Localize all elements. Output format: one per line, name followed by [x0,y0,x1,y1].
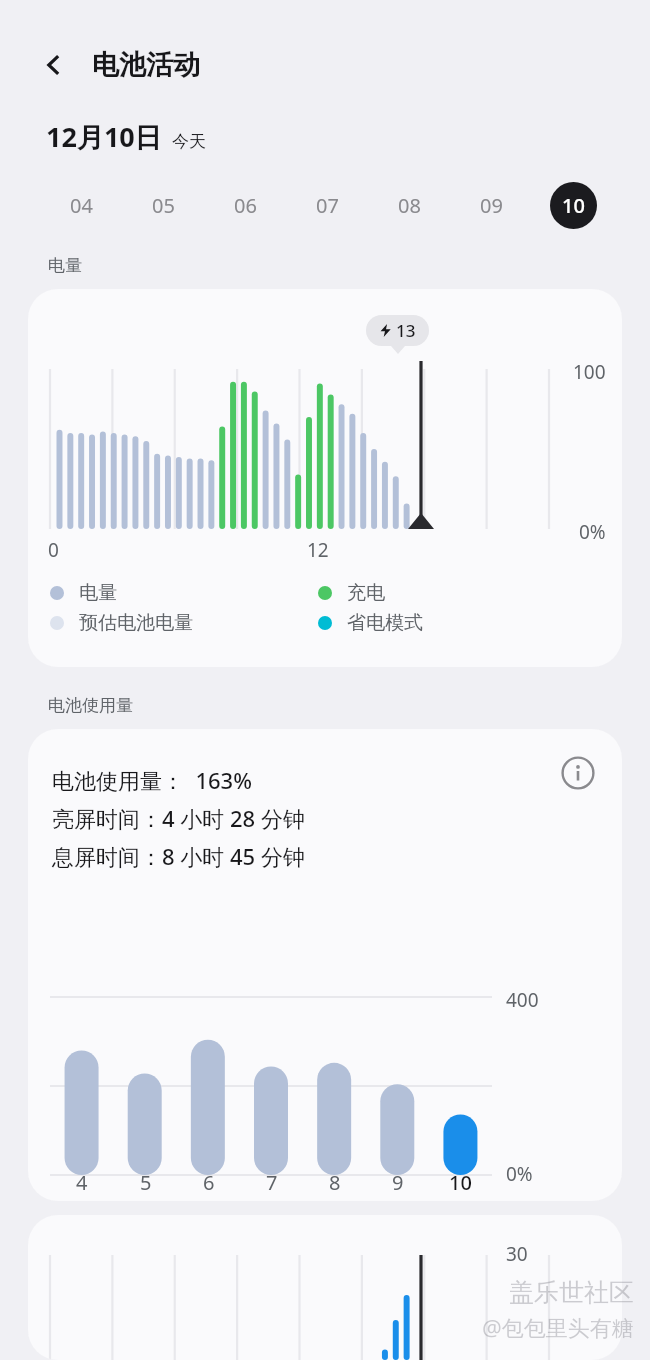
staticText: 充电 [347,581,385,605]
staticText: 预估电池电量 [79,611,193,635]
staticText: 05 [152,192,175,219]
staticText: 省电模式 [347,611,423,635]
staticText: 9 [392,1169,404,1196]
button[interactable]: 05 [122,177,204,233]
staticText: 电池使用量： 163% [52,765,252,795]
staticText: 电池活动 [92,48,200,82]
staticText: 8 [329,1169,341,1196]
staticText: 电池使用量 [48,695,133,716]
button[interactable]: Information [556,751,600,795]
button[interactable]: 充电 [318,581,385,605]
staticText: 6 [203,1169,215,1196]
staticText: 07 [316,192,339,219]
staticText: 13 [396,319,416,342]
staticText: 盖乐世社区 [509,1277,634,1308]
staticText: 0% [579,519,606,545]
staticText: 08 [398,192,421,219]
staticText: 0% [506,1161,533,1187]
staticText: 息屏时间：8 小时 45 分钟 [52,841,305,871]
button[interactable]: 30 [28,1215,622,1360]
staticText: 0 [48,537,59,563]
staticText: 亮屏时间：4 小时 28 分钟 [52,803,305,833]
staticText: 400 [506,987,539,1013]
button[interactable]: 09 [450,177,532,233]
staticText: 电量 [48,255,82,276]
button[interactable]: 100 [28,289,622,667]
button[interactable]: 07 [286,177,368,233]
button[interactable]: 电量 [50,581,318,605]
staticText: 100 [573,359,606,385]
button[interactable]: 08 [368,177,450,233]
button[interactable]: 预估电池电量 [50,611,318,635]
staticText: @包包里头有糖 [482,1312,634,1342]
staticText: 今天 [172,131,206,152]
staticText: 06 [234,192,257,219]
staticText: 12月10日 [46,118,162,155]
staticText: 5 [140,1169,152,1196]
staticText: 10 [449,1169,472,1196]
staticText: 30 [506,1241,528,1267]
button[interactable]: 电池使用量： 163% [28,729,622,1201]
staticText: 09 [480,192,503,219]
staticText: 04 [70,192,93,219]
staticText: 4 [76,1169,88,1196]
button[interactable]: 省电模式 [318,611,423,635]
staticText: 12 [307,537,329,563]
button[interactable]: 04 [40,177,122,233]
button[interactable]: 06 [204,177,286,233]
staticText: 10 [562,192,585,219]
button[interactable]: Back [34,45,74,85]
button[interactable]: 10 [532,177,614,233]
staticText: 电量 [79,581,117,605]
staticText: 7 [266,1169,278,1196]
